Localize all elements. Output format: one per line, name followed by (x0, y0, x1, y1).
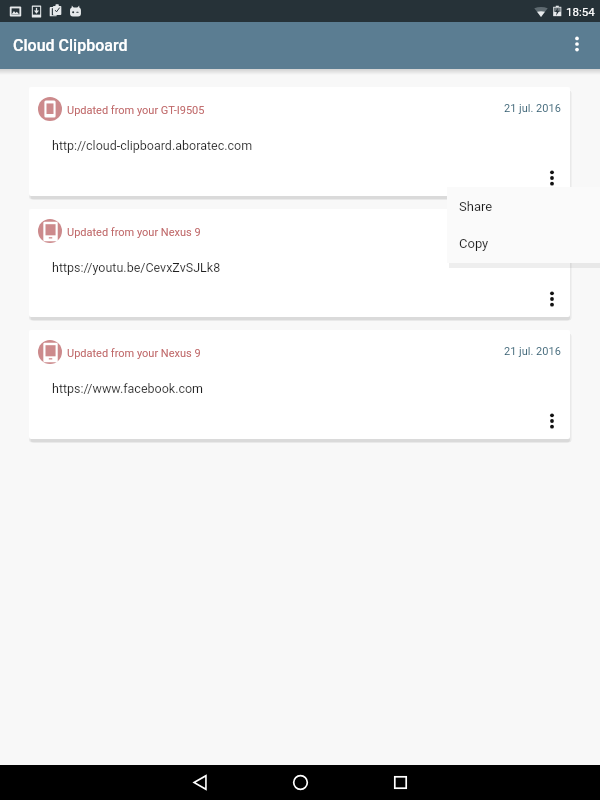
button[interactable]: More options (555, 22, 599, 66)
button[interactable]: Updated from your Nexus 9 (29, 330, 570, 439)
staticText: 21 jul. 2016 (504, 345, 561, 358)
button[interactable]: Copy (447, 225, 600, 262)
button[interactable]: Back (150, 765, 250, 800)
staticText: https://www.facebook.com (52, 381, 204, 396)
button[interactable]: Updated from your Nexus 9 (29, 209, 570, 317)
staticText: https://youtu.be/CevxZvSJLk8 (52, 260, 221, 275)
staticText: Updated from your GT-I9505 (67, 104, 205, 117)
button[interactable]: Recent apps (350, 765, 450, 800)
button[interactable]: Share (447, 187, 600, 225)
button[interactable]: Item options (532, 279, 570, 317)
button[interactable]: Home (250, 765, 350, 800)
staticText: Updated from your Nexus 9 (67, 226, 201, 239)
staticText: Updated from your Nexus 9 (67, 347, 201, 360)
staticText: 18:54 (566, 5, 595, 18)
button[interactable]: Item options (532, 158, 570, 196)
staticText: Cloud Clipboard (13, 36, 128, 55)
staticText: http://cloud-clipboard.aboratec.com (52, 138, 253, 153)
button[interactable]: Item options (532, 401, 570, 439)
staticText: Copy (459, 236, 489, 251)
button[interactable]: Updated from your GT-I9505 (29, 87, 570, 196)
staticText: 21 jul. 2016 (504, 102, 561, 115)
staticText: Share (459, 199, 493, 214)
